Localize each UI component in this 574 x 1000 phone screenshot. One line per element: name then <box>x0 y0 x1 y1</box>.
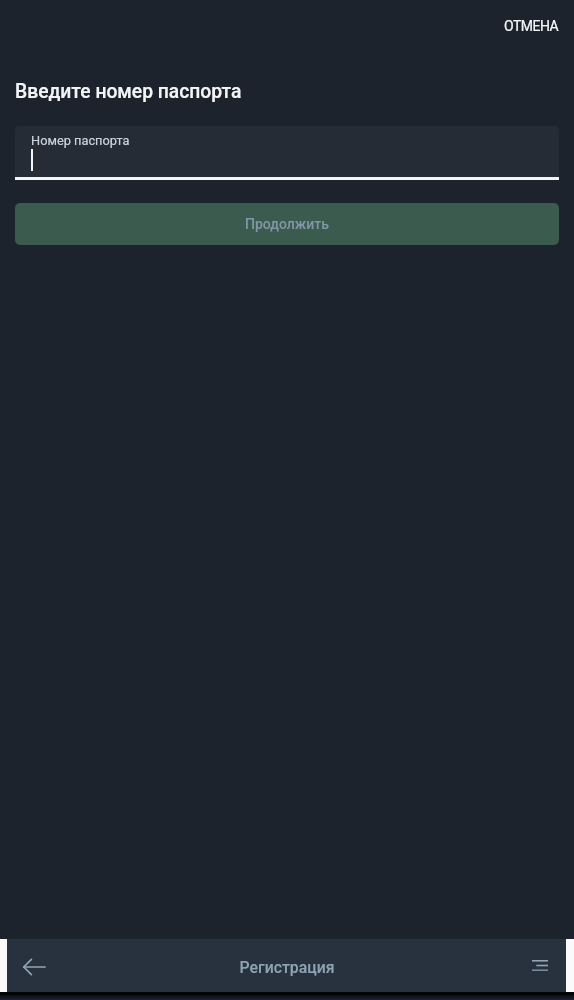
button[interactable]: Номер паспорта <box>15 126 559 180</box>
staticText: Регистрация <box>68 958 506 977</box>
button[interactable]: Menu <box>506 939 574 992</box>
staticText: Продолжить <box>245 216 329 232</box>
button[interactable]: ОТМЕНА <box>484 0 574 44</box>
staticText: Введите номер паспорта <box>15 80 242 103</box>
button[interactable]: Back <box>0 939 68 992</box>
staticText: Номер паспорта <box>31 133 130 148</box>
staticText: ОТМЕНА <box>504 18 559 34</box>
button[interactable]: Продолжить <box>15 203 559 245</box>
